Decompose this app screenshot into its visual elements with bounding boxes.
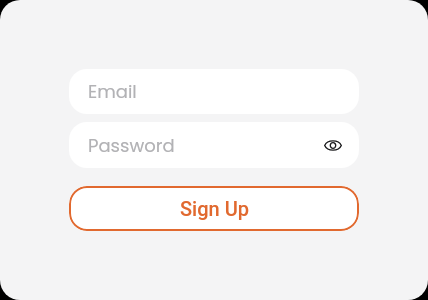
staticText: Email	[88, 79, 137, 104]
staticText: Sign Up	[180, 197, 249, 220]
button[interactable]: Password	[69, 122, 359, 168]
button[interactable]: Sign Up	[69, 186, 359, 231]
button[interactable]: Email	[69, 69, 359, 114]
button[interactable]: Show password	[320, 132, 346, 158]
staticText: Password	[88, 133, 175, 158]
